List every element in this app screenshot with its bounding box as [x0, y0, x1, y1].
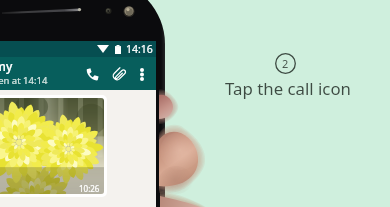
staticText: 14:16	[126, 42, 153, 56]
button[interactable]: 2	[275, 53, 296, 74]
staticText: 2	[282, 56, 289, 71]
staticText: last seen at 14:14	[0, 74, 48, 87]
staticText: Tommy	[0, 58, 13, 74]
button[interactable]: Call	[79, 61, 105, 87]
button[interactable]: Attach	[105, 61, 131, 87]
staticText: 10:26	[79, 183, 100, 194]
button[interactable]: 10:26	[0, 95, 107, 197]
staticText: Tap the call icon	[225, 77, 351, 100]
button[interactable]: More options	[131, 63, 153, 85]
